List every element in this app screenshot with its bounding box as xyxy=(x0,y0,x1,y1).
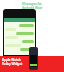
staticText: Messages for xyxy=(22,2,42,6)
button[interactable] xyxy=(5,44,21,47)
staticText: Android Wear xyxy=(22,6,43,10)
button[interactable] xyxy=(22,40,34,43)
button[interactable] xyxy=(19,24,34,27)
staticText: Apple Watch xyxy=(2,58,21,62)
staticText: Today Widget xyxy=(2,62,23,66)
button[interactable] xyxy=(5,28,16,31)
button[interactable] xyxy=(5,36,18,39)
button[interactable] xyxy=(16,32,34,35)
button[interactable] xyxy=(20,48,34,51)
